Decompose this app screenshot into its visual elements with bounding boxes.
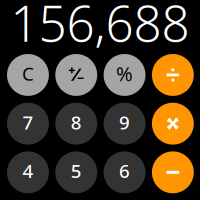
staticText: 4: [22, 158, 33, 183]
button[interactable]: 8: [55, 103, 97, 145]
button[interactable]: Subtract: [152, 151, 194, 193]
staticText: 8: [71, 110, 82, 135]
staticText: 7: [22, 110, 33, 135]
button[interactable]: Plus or minus: [55, 54, 97, 96]
button[interactable]: 7: [7, 103, 49, 145]
staticText: 6: [119, 158, 130, 183]
button[interactable]: 9: [104, 103, 145, 145]
staticText: C: [22, 61, 34, 86]
staticText: %: [116, 60, 133, 87]
button[interactable]: %: [104, 54, 145, 96]
button[interactable]: 5: [55, 151, 97, 193]
staticText: 9: [119, 110, 130, 135]
button[interactable]: C: [7, 54, 49, 96]
button[interactable]: Divide: [152, 54, 194, 96]
button[interactable]: 6: [104, 151, 145, 193]
button[interactable]: Multiply: [152, 103, 194, 145]
staticText: 5: [71, 158, 82, 183]
button[interactable]: 4: [7, 151, 49, 193]
staticText: 156,688: [10, 0, 189, 55]
